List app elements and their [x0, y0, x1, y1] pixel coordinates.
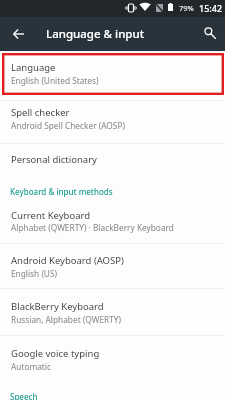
button[interactable]: Navigate up: [4, 23, 32, 45]
staticText: Language & input: [46, 26, 145, 42]
staticText: Google voice typing: [11, 347, 100, 360]
staticText: Personal dictionary: [11, 153, 97, 166]
staticText: Language: [11, 61, 56, 74]
button[interactable]: BlackBerry Keyboard: [0, 288, 225, 335]
button[interactable]: Google voice typing: [0, 335, 225, 380]
button[interactable]: Search: [196, 23, 220, 44]
staticText: English (United States): [11, 75, 99, 86]
staticText: Automatic: [11, 361, 51, 372]
button[interactable]: Language: [0, 50, 225, 100]
staticText: Russian, Alphabet (QWERTY): [11, 314, 121, 325]
staticText: English (US): [11, 268, 57, 279]
button[interactable]: Current Keyboard: [0, 198, 225, 243]
button[interactable]: Spell checker: [0, 100, 225, 142]
staticText: Speech: [10, 391, 38, 400]
staticText: Spell checker: [11, 106, 70, 119]
staticText: Current Keyboard: [11, 209, 91, 222]
staticText: Android Keyboard (AOSP): [11, 254, 124, 267]
staticText: 15:42: [199, 2, 223, 14]
button[interactable]: Android Keyboard (AOSP): [0, 243, 225, 288]
staticText: Keyboard & input methods: [10, 186, 113, 197]
staticText: 79%: [179, 3, 194, 13]
button[interactable]: Personal dictionary: [0, 143, 225, 180]
staticText: BlackBerry Keyboard: [11, 300, 104, 313]
staticText: Android Spell Checker (AOSP): [11, 120, 125, 131]
staticText: Alphabet (QWERTY) · BlackBerry Keyboard: [11, 222, 174, 233]
